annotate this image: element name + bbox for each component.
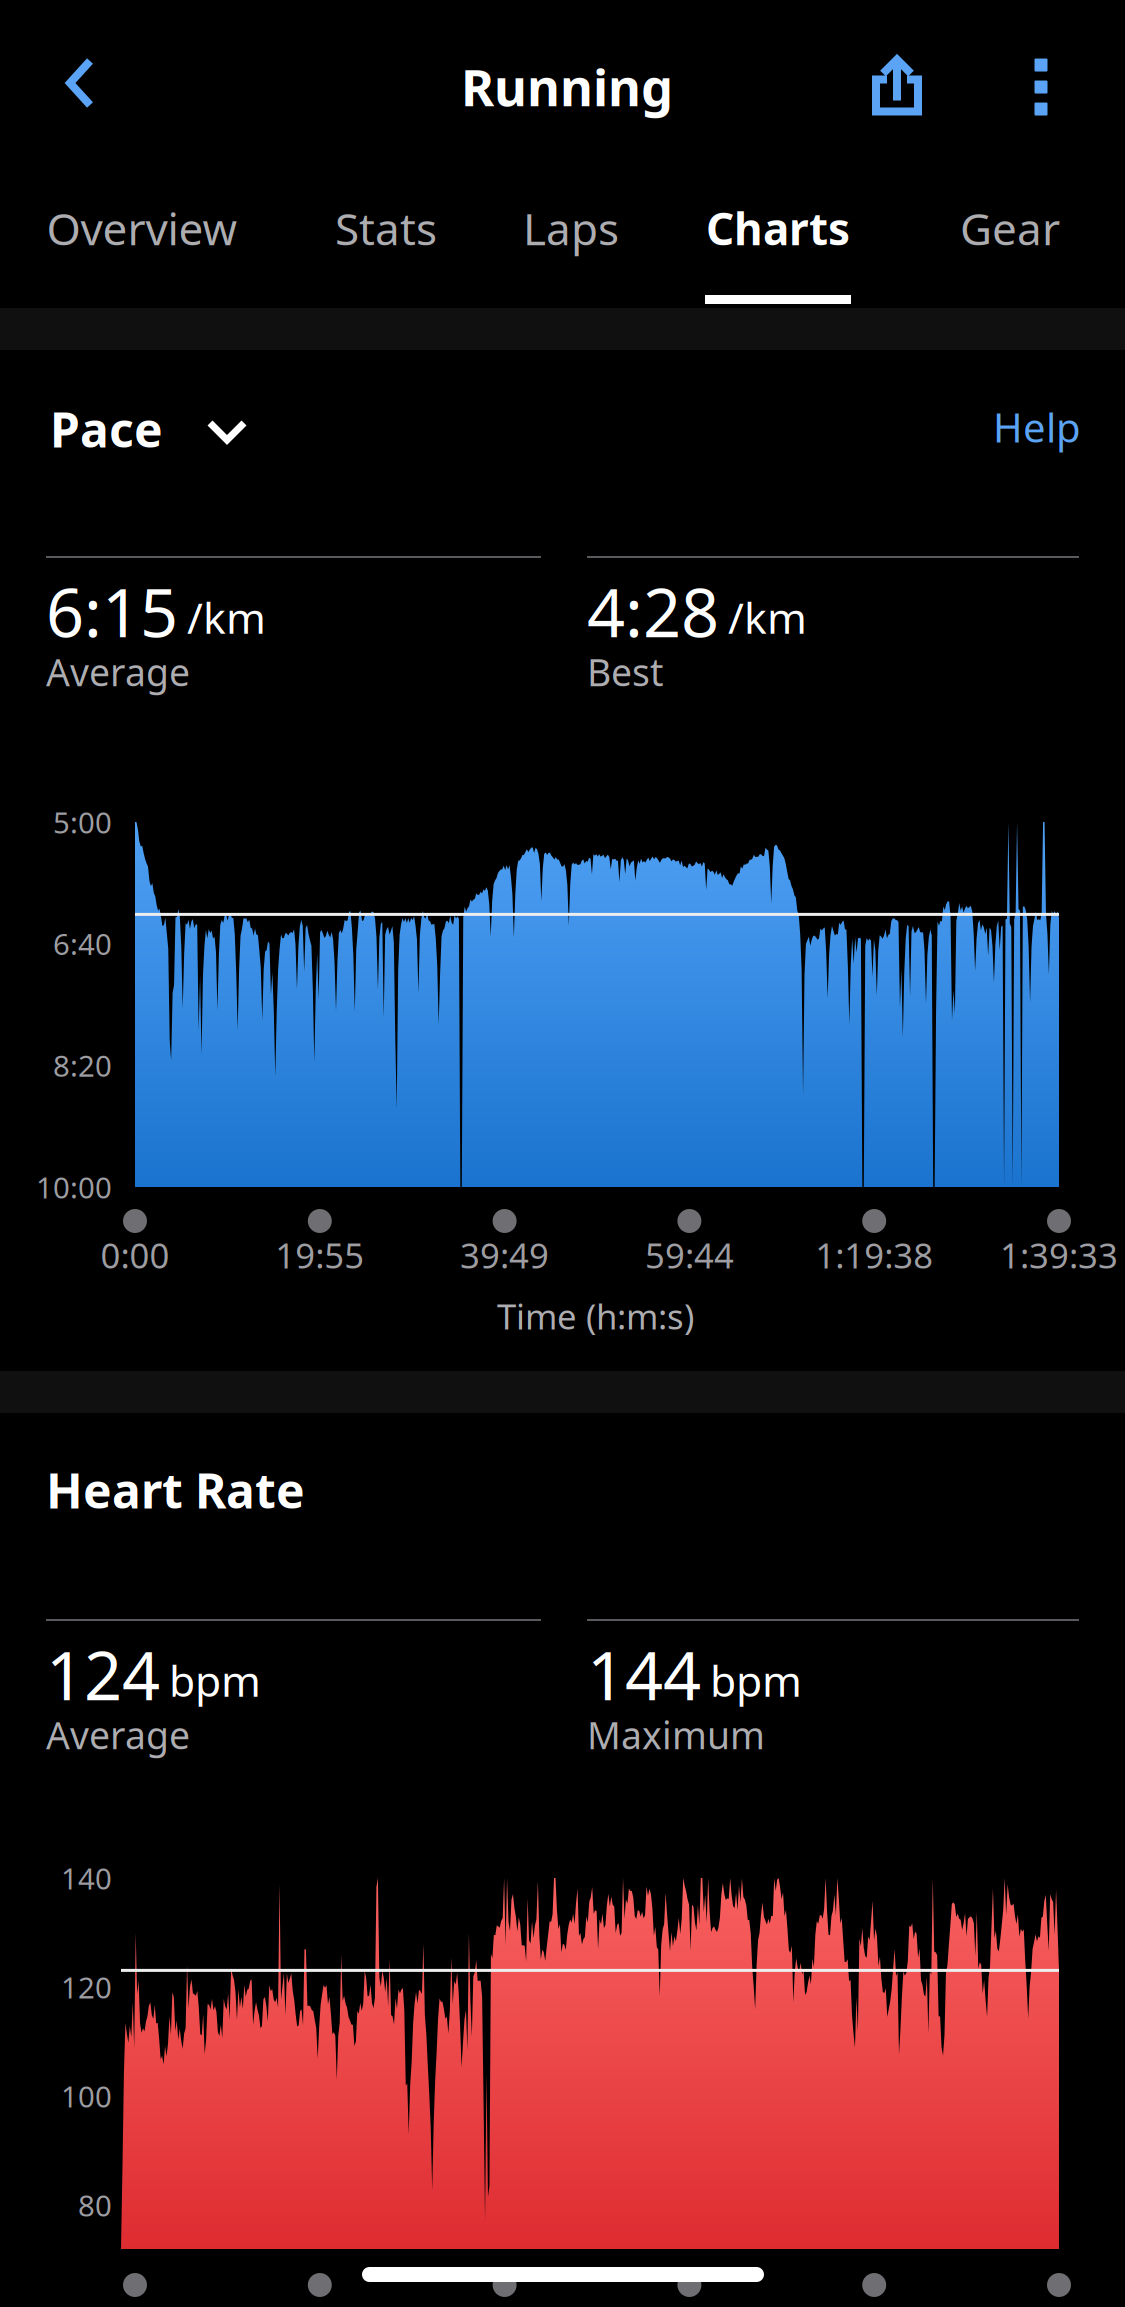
staticText: 80 [78,2185,112,2224]
staticText: Pace [50,397,163,461]
staticText: Time (h:m:s) [497,1293,694,1339]
button[interactable]: More options [986,12,1096,162]
staticText: 1:39:33 [1000,1232,1118,1278]
staticText: 100 [61,2076,112,2115]
staticText: Gear [960,199,1060,257]
staticText: Heart Rate [46,1458,305,1522]
staticText: 4:28 [587,567,719,655]
staticText: 19:55 [275,1232,364,1278]
staticText: 0:00 [100,1232,169,1278]
staticText: 6:40 [53,924,112,963]
staticText: bpm [169,1652,261,1709]
button[interactable]: Back [0,8,160,158]
staticText: 8:20 [53,1046,112,1085]
staticText: Laps [523,199,619,257]
staticText: 144 [587,1630,701,1718]
staticText: 6:15 [46,567,178,655]
staticText: Stats [335,199,437,257]
staticText: 140 [61,1858,112,1897]
staticText: Help [993,400,1081,453]
button[interactable]: Help [977,402,1081,452]
staticText: 120 [61,1967,112,2006]
staticText: Running [461,53,673,120]
button[interactable]: Overview [42,175,242,308]
staticText: Maximum [587,1710,765,1760]
staticText: 5:00 [53,802,112,841]
button[interactable]: Charts [678,175,878,308]
staticText: 124 [46,1630,160,1718]
staticText: Average [46,647,190,697]
staticText: bpm [710,1652,802,1709]
staticText: Charts [706,199,850,257]
staticText: Average [46,1710,190,1760]
button[interactable]: Share [832,10,962,160]
button[interactable]: Pace [46,400,296,462]
staticText: /km [728,589,807,646]
staticText: 39:49 [460,1232,549,1278]
button[interactable]: Gear [910,175,1110,308]
button[interactable]: Laps [471,175,671,308]
staticText: /km [187,589,266,646]
staticText: 59:44 [645,1232,734,1278]
button[interactable]: Stats [286,175,486,308]
staticText: 10:00 [36,1168,112,1207]
staticText: Overview [46,199,237,257]
staticText: 1:19:38 [815,1232,933,1278]
staticText: Best [587,647,663,697]
